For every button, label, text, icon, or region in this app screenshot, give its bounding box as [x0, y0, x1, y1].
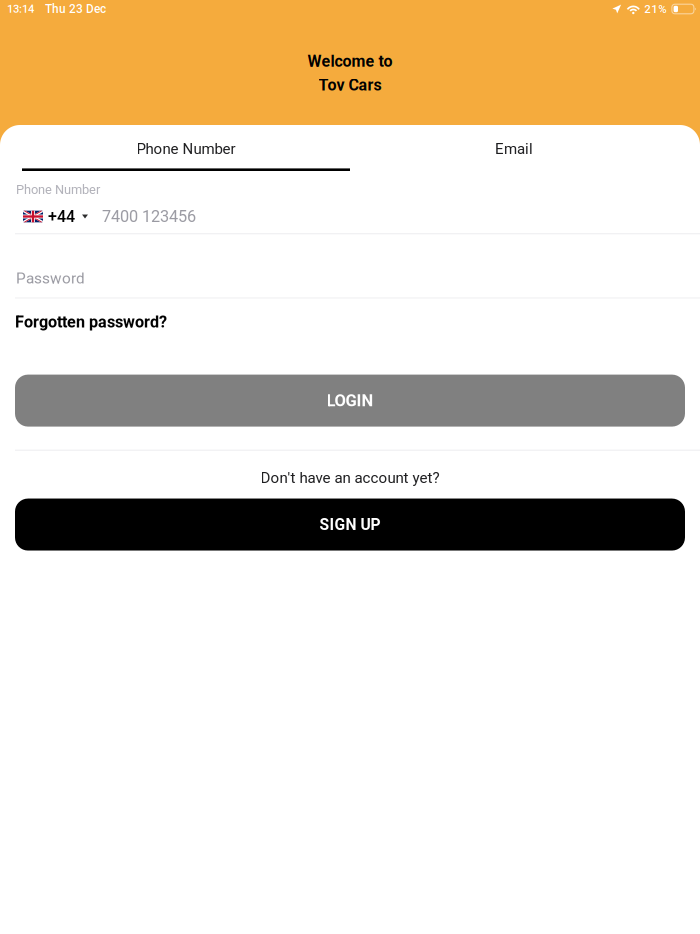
- staticText: Tov Cars: [318, 76, 381, 95]
- staticText: Don't have an account yet?: [260, 469, 439, 487]
- staticText: 21%: [644, 2, 666, 16]
- button[interactable]: Email: [350, 125, 678, 171]
- staticText: LOGIN: [326, 391, 373, 410]
- button[interactable]: SIGN UP: [0, 499, 700, 551]
- staticText: Welcome to: [307, 52, 392, 71]
- staticText: 13:14: [7, 2, 34, 15]
- staticText: SIGN UP: [319, 515, 380, 534]
- staticText: Phone Number: [16, 182, 100, 197]
- button[interactable]: LOGIN: [0, 375, 700, 427]
- staticText: Forgotten password?: [15, 313, 167, 331]
- button[interactable]: Forgotten password?: [0, 299, 700, 339]
- staticText: 7400 123456: [102, 207, 196, 226]
- button[interactable]: Password: [0, 234, 700, 297]
- button[interactable]: Country calling code, United Kingdom plu…: [16, 208, 88, 225]
- button[interactable]: Phone Number: [22, 125, 350, 171]
- staticText: Thu 23 Dec: [45, 2, 106, 16]
- button[interactable]: 7400 123456: [88, 208, 700, 225]
- staticText: Phone Number: [136, 140, 235, 158]
- staticText: Email: [495, 140, 533, 158]
- staticText: Password: [16, 269, 85, 287]
- staticText: +44: [48, 207, 75, 226]
